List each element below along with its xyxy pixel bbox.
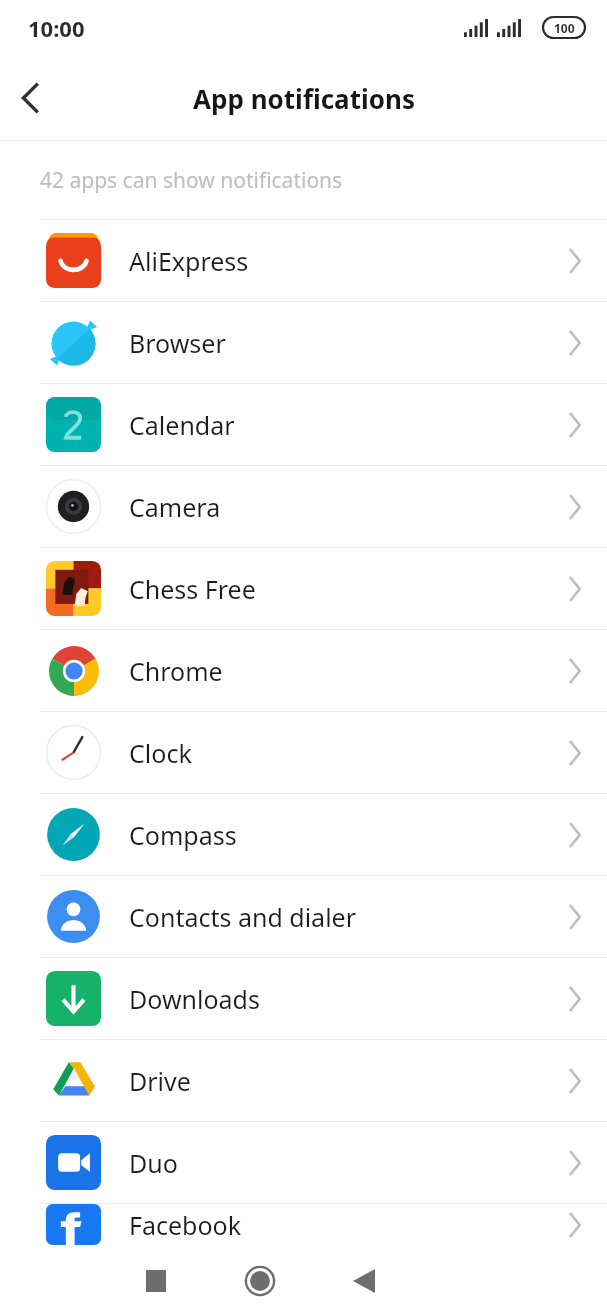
button[interactable]: Camera [0,466,607,547]
button[interactable]: Drive [0,1040,607,1121]
staticText: Downloads [129,982,541,1016]
staticText: Calendar [129,408,541,442]
staticText: 100 [554,20,575,36]
staticText: Chess Free [129,572,541,606]
button[interactable]: Downloads [0,958,607,1039]
button[interactable]: Chrome [0,630,607,711]
staticText: Camera [129,490,541,524]
button[interactable]: Facebook [0,1204,607,1245]
staticText: AliExpress [129,244,541,278]
button[interactable]: Back [0,67,62,129]
button[interactable]: Calendar [0,384,607,465]
staticText: Browser [129,326,541,360]
button[interactable]: Compass [0,794,607,875]
button[interactable]: Back [336,1253,392,1309]
button[interactable]: Chess Free [0,548,607,629]
staticText: Facebook [129,1208,541,1242]
button[interactable]: Contacts and dialer [0,876,607,957]
staticText: 42 apps can show notifications [40,166,343,195]
button[interactable]: AliExpress [0,220,607,301]
staticText: Drive [129,1064,541,1098]
staticText: Compass [129,818,541,852]
button[interactable]: Home [232,1253,288,1309]
staticText: Chrome [129,654,541,688]
button[interactable]: Recents [128,1253,184,1309]
button[interactable]: Clock [0,712,607,793]
staticText: Contacts and dialer [129,900,541,934]
staticText: App notifications [193,81,415,116]
staticText: 10:00 [28,13,85,43]
staticText: Duo [129,1146,541,1180]
button[interactable]: Browser [0,302,607,383]
staticText: Clock [129,736,541,770]
button[interactable]: Duo [0,1122,607,1203]
